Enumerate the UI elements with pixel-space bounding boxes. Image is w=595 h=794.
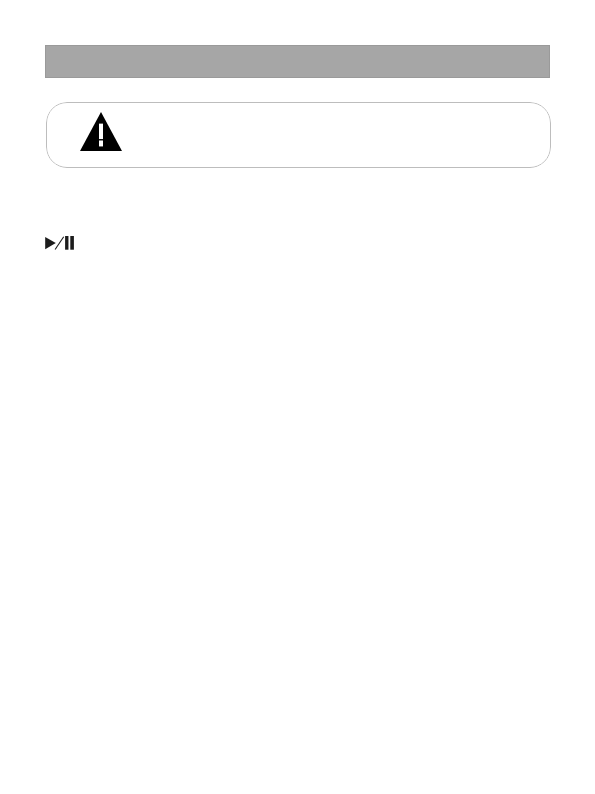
other: Warning [80, 112, 122, 151]
button[interactable]: Warning [46, 102, 551, 168]
button[interactable]: Play pause [45, 236, 75, 250]
